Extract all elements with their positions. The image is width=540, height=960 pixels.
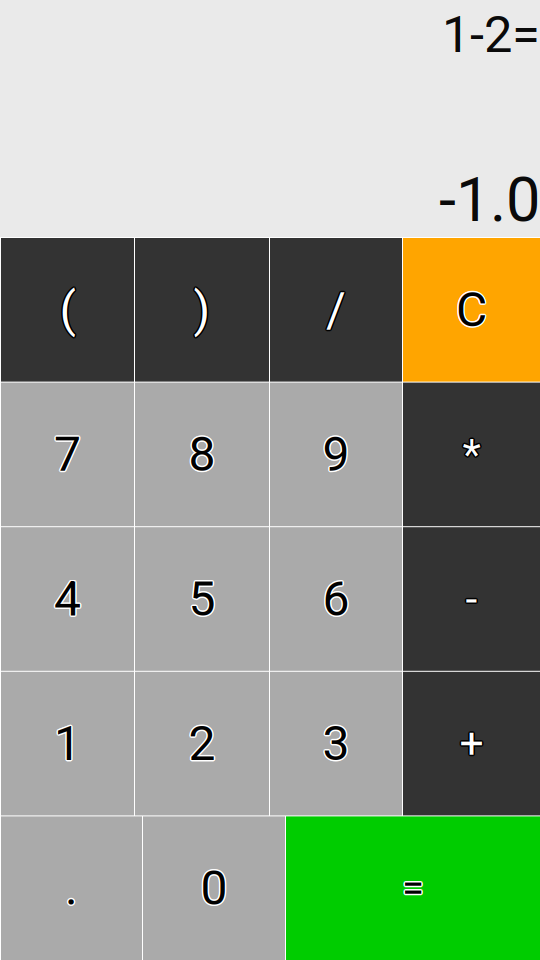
- staticText: -: [465, 572, 477, 622]
- staticText: 7: [55, 426, 82, 482]
- button[interactable]: 2: [135, 672, 269, 815]
- staticText: .: [66, 859, 79, 915]
- button[interactable]: 9: [270, 383, 402, 526]
- button[interactable]: 3: [270, 672, 402, 815]
- button[interactable]: 7: [1, 383, 134, 526]
- staticText: -: [466, 573, 478, 623]
- staticText: 9: [322, 428, 349, 484]
- button[interactable]: 6: [270, 527, 402, 671]
- staticText: +: [458, 719, 482, 769]
- staticText: /: [326, 282, 346, 338]
- staticText: 3: [324, 715, 351, 772]
- staticText: 6: [324, 571, 351, 627]
- button[interactable]: Multiply: [403, 383, 540, 526]
- staticText: 9: [324, 426, 351, 482]
- staticText: 3: [322, 717, 349, 773]
- staticText: 0: [201, 861, 228, 917]
- staticText: /: [325, 283, 345, 339]
- button[interactable]: 8: [135, 383, 269, 526]
- staticText: /: [327, 282, 347, 338]
- staticText: 0: [202, 860, 229, 916]
- staticText: 6: [322, 572, 349, 629]
- staticText: 8: [190, 426, 217, 482]
- staticText: 5: [187, 572, 214, 628]
- staticText: C: [455, 283, 486, 339]
- staticText: =: [400, 865, 422, 912]
- button[interactable]: Divide: [270, 238, 402, 382]
- staticText: 2: [188, 715, 215, 772]
- staticText: 8: [188, 425, 215, 481]
- staticText: 7: [54, 428, 81, 484]
- staticText: 7: [55, 427, 82, 483]
- button[interactable]: Decimal point: [1, 816, 142, 960]
- staticText: .: [65, 860, 78, 916]
- staticText: (: [61, 282, 77, 338]
- staticText: 7: [55, 425, 82, 481]
- staticText: 6: [323, 570, 350, 626]
- staticText: /: [325, 281, 345, 337]
- button[interactable]: Minus: [403, 527, 540, 671]
- staticText: 0: [200, 862, 227, 918]
- staticText: (: [58, 282, 74, 338]
- staticText: =: [403, 865, 425, 912]
- button[interactable]: 4: [1, 527, 134, 671]
- button[interactable]: 0: [143, 816, 285, 960]
- staticText: 4: [54, 572, 81, 629]
- staticText: *: [461, 430, 479, 480]
- staticText: 1: [52, 715, 79, 772]
- staticText: +: [460, 720, 484, 770]
- staticText: =: [402, 866, 424, 913]
- staticText: 1: [53, 714, 80, 771]
- staticText: 7: [53, 427, 80, 483]
- staticText: 8: [187, 426, 214, 482]
- staticText: 0: [199, 861, 226, 917]
- staticText: 2: [189, 714, 216, 771]
- staticText: (: [59, 280, 75, 336]
- staticText: 4: [54, 569, 81, 626]
- staticText: 2: [187, 714, 214, 771]
- staticText: 5: [189, 572, 216, 628]
- staticText: *: [462, 431, 480, 481]
- button[interactable]: 5: [135, 527, 269, 671]
- staticText: C: [454, 282, 485, 338]
- staticText: (: [60, 283, 76, 339]
- staticText: 0: [199, 859, 226, 915]
- staticText: 3: [321, 716, 348, 773]
- staticText: ): [192, 281, 209, 337]
- button[interactable]: Close bracket: [135, 238, 269, 382]
- staticText: 8: [187, 425, 214, 481]
- staticText: 4: [53, 570, 80, 626]
- staticText: 4: [54, 571, 81, 627]
- staticText: -: [466, 575, 478, 625]
- staticText: ): [194, 281, 211, 337]
- staticText: 6: [321, 572, 348, 628]
- staticText: -: [464, 574, 476, 624]
- staticText: -: [465, 575, 477, 625]
- staticText: =: [402, 863, 424, 910]
- button[interactable]: 1: [1, 672, 134, 815]
- staticText: 5: [187, 570, 214, 626]
- staticText: 4: [55, 570, 82, 626]
- staticText: =: [403, 866, 425, 913]
- button[interactable]: Open bracket: [1, 238, 134, 382]
- staticText: *: [462, 428, 480, 478]
- staticText: 9: [322, 426, 349, 482]
- button[interactable]: Plus: [403, 672, 540, 815]
- staticText: C: [456, 280, 487, 336]
- staticText: 8: [188, 426, 215, 482]
- staticText: 4: [52, 571, 79, 627]
- staticText: C: [457, 282, 488, 338]
- staticText: *: [463, 430, 481, 480]
- staticText: 4: [53, 572, 80, 628]
- staticText: 6: [321, 571, 348, 627]
- staticText: .: [63, 860, 76, 916]
- staticText: 7: [52, 426, 79, 482]
- staticText: 8: [188, 428, 215, 484]
- staticText: -1.0: [439, 164, 540, 236]
- button[interactable]: Clear: [403, 238, 540, 382]
- staticText: +: [458, 718, 482, 768]
- button[interactable]: Equals: [286, 816, 540, 960]
- staticText: *: [461, 428, 479, 478]
- staticText: (: [60, 281, 76, 337]
- staticText: /: [326, 280, 346, 336]
